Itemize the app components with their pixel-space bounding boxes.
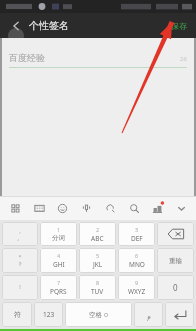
staticText: 123 [43, 310, 55, 319]
button[interactable]: Emoji [53, 199, 71, 217]
staticText: PQRS [50, 287, 67, 296]
staticText: 符 [14, 310, 21, 319]
button[interactable]: 4 [40, 248, 77, 273]
button[interactable]: Backspace [157, 222, 194, 246]
button[interactable]: Enter [165, 302, 194, 327]
staticText: ， 。 [17, 228, 23, 241]
staticText: 百度经验 [9, 52, 45, 63]
staticText: GHI [53, 260, 65, 269]
staticText: ABC [91, 234, 104, 243]
button[interactable]: ＊ ？ [2, 248, 38, 273]
button[interactable]: 7 [40, 275, 77, 300]
staticText: 个性签名 [29, 19, 69, 32]
staticText: 1 [57, 226, 61, 233]
button[interactable]: Settings [148, 199, 166, 217]
button[interactable]: 重输 [157, 248, 194, 273]
staticText: MNO [129, 260, 145, 269]
staticText: 重输 [169, 257, 182, 265]
staticText: 2 [96, 226, 100, 233]
staticText: 0 [173, 282, 178, 293]
button[interactable]: ， 。 [2, 222, 38, 246]
staticText: WXYZ [128, 287, 146, 296]
button[interactable]: 9 [118, 275, 155, 300]
staticText: 3 [135, 226, 139, 233]
button[interactable]: 3 [118, 222, 155, 246]
button[interactable]: 123 [34, 302, 63, 327]
staticText: ＊ ？ [17, 254, 23, 267]
staticText: 6 [135, 252, 139, 259]
button[interactable]: 空格 [65, 302, 132, 327]
button[interactable]: Search [125, 199, 143, 217]
button[interactable]: Clipboard [101, 199, 119, 217]
staticText: 7 [57, 279, 61, 286]
button[interactable]: ！ [2, 275, 38, 300]
button[interactable]: 1 [40, 222, 77, 246]
button[interactable]: 符 [2, 302, 32, 327]
button[interactable]: Hide keyboard [172, 199, 190, 217]
staticText: 4 [57, 252, 61, 259]
staticText: DEF [131, 234, 143, 243]
staticText: ！ [17, 284, 23, 291]
button[interactable]: Comma and return options [134, 302, 163, 327]
button[interactable]: 6 [118, 248, 155, 273]
staticText: 保存 [171, 21, 187, 31]
staticText: 26 [180, 55, 187, 63]
staticText: 分词 [52, 234, 65, 242]
button[interactable]: 百度经验 [9, 52, 187, 63]
staticText: 9 [135, 279, 139, 286]
button[interactable]: 2 [79, 222, 116, 246]
button[interactable]: Voice input [77, 199, 95, 217]
button[interactable]: Back [6, 16, 26, 36]
staticText: 5 [96, 252, 100, 259]
staticText: 空格 [89, 311, 102, 319]
button[interactable]: Apps [6, 199, 24, 217]
button[interactable]: 0 [157, 275, 194, 300]
button[interactable]: Keyboard [30, 199, 48, 217]
button[interactable]: 5 [79, 248, 116, 273]
staticText: 8 [96, 279, 100, 286]
button[interactable]: 保存 [168, 19, 190, 33]
staticText: TUV [91, 287, 104, 296]
staticText: JKL [93, 260, 103, 269]
button[interactable]: 8 [79, 275, 116, 300]
